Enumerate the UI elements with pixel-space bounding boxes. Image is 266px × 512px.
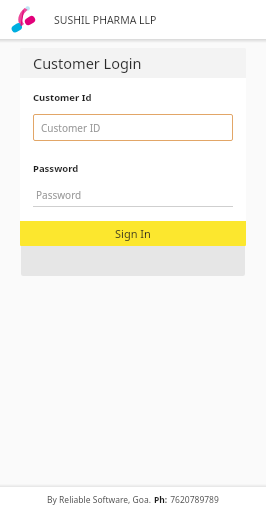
staticText: Password <box>33 162 79 175</box>
staticText: Sign In <box>115 226 151 241</box>
staticText: Password <box>36 188 82 202</box>
staticText: Customer Login <box>33 53 142 73</box>
staticText: Ph: <box>154 494 168 506</box>
staticText: Customer ID <box>41 121 101 135</box>
button[interactable]: Sign In <box>20 221 246 246</box>
staticText: SUSHIL PHARMA LLP <box>54 13 157 27</box>
button[interactable]: Password <box>33 184 233 207</box>
button[interactable]: Customer ID <box>33 114 233 141</box>
staticText: By Reliable Software, Goa. <box>47 494 154 506</box>
other: Sushil Pharma logo <box>9 5 39 35</box>
staticText: 7620789789 <box>168 494 219 506</box>
staticText: Customer Id <box>33 91 92 104</box>
